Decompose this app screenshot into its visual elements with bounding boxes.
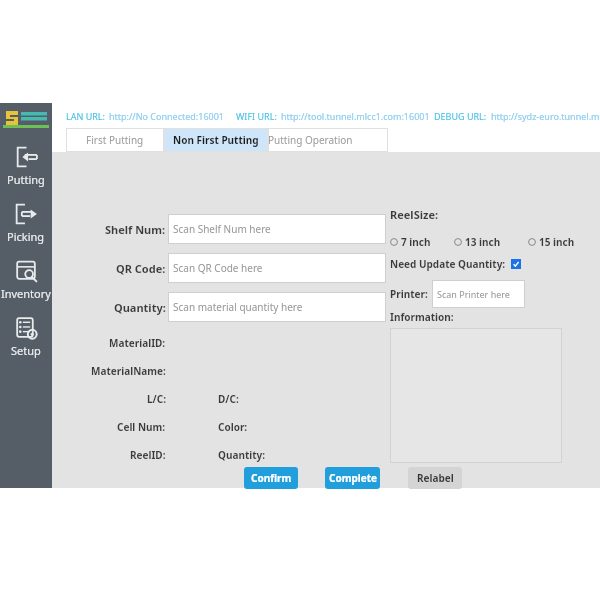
staticText: Picking xyxy=(7,229,45,244)
button[interactable]: Scan Printer here xyxy=(432,280,525,308)
staticText: Printer: xyxy=(390,287,428,301)
button[interactable]: 7 inch xyxy=(390,235,431,249)
staticText: Scan Printer here xyxy=(437,288,510,300)
staticText: 13 inch xyxy=(465,235,501,249)
staticText: Setup xyxy=(11,343,41,358)
other: Picking xyxy=(13,201,39,227)
staticText: Cell Num: xyxy=(117,420,166,434)
staticText: WIFI URL: xyxy=(236,110,277,122)
staticText: Non First Putting xyxy=(173,133,259,147)
button[interactable]: First Putting xyxy=(66,128,164,152)
button[interactable]: Complete xyxy=(325,467,380,489)
button[interactable]: Scan material quantity here xyxy=(168,292,386,322)
button[interactable]: Putting xyxy=(0,141,52,190)
button[interactable]: Putting Operation History xyxy=(268,128,388,152)
staticText: Relabel xyxy=(417,471,454,485)
staticText: Scan QR Code here xyxy=(173,261,263,275)
staticText: Information: xyxy=(390,310,454,324)
staticText: Need Update Quantity: xyxy=(390,257,506,271)
staticText: Putting xyxy=(7,172,45,187)
staticText: Scan material quantity here xyxy=(173,300,303,314)
staticText: Confirm xyxy=(251,471,292,485)
staticText: http://sydz-euro.tunnel.mlcc1.com:16001 xyxy=(491,110,600,122)
button[interactable]: Inventory xyxy=(0,255,52,304)
button[interactable]: Setup xyxy=(0,312,52,361)
button[interactable]: Picking xyxy=(0,198,52,247)
staticText: Scan Shelf Num here xyxy=(173,222,271,236)
staticText: http://tool.tunnel.mlcc1.com:16001 xyxy=(281,110,430,122)
button[interactable]: Non First Putting xyxy=(164,128,268,152)
button[interactable]: Scan QR Code here xyxy=(168,253,386,283)
other: Putting xyxy=(13,144,39,170)
other: Need Update Quantity checkbox xyxy=(511,259,521,269)
staticText: MaterialName: xyxy=(91,364,166,378)
button[interactable]: 15 inch xyxy=(528,235,575,249)
staticText: Quantity: xyxy=(114,300,166,315)
button[interactable]: 13 inch xyxy=(454,235,501,249)
other: Inventory xyxy=(13,258,39,284)
staticText: LAN URL: xyxy=(66,110,105,122)
staticText: MaterialID: xyxy=(109,336,166,350)
other: Setup xyxy=(13,315,39,341)
staticText: ReelID: xyxy=(130,448,166,462)
button[interactable]: Scan Shelf Num here xyxy=(168,214,386,244)
staticText: L/C: xyxy=(147,392,166,406)
staticText: DEBUG URL: xyxy=(434,110,487,122)
button[interactable]: Relabel xyxy=(408,467,462,489)
staticText: ReelSize: xyxy=(390,207,439,222)
staticText: 15 inch xyxy=(539,235,575,249)
button[interactable]: Confirm xyxy=(244,467,298,489)
staticText: Shelf Num: xyxy=(105,222,166,237)
staticText: QR Code: xyxy=(116,261,166,276)
staticText: http://No Connected:16001 xyxy=(109,110,224,122)
staticText: Inventory xyxy=(1,286,51,301)
staticText: D/C: xyxy=(218,392,239,406)
staticText: First Putting xyxy=(86,133,144,147)
staticText: 7 inch xyxy=(401,235,431,249)
staticText: Putting Operation History xyxy=(268,133,388,147)
staticText: Quantity: xyxy=(218,448,266,462)
button[interactable]: Need Update Quantity: xyxy=(390,257,521,271)
staticText: Color: xyxy=(218,420,248,434)
staticText: Complete xyxy=(329,471,377,485)
